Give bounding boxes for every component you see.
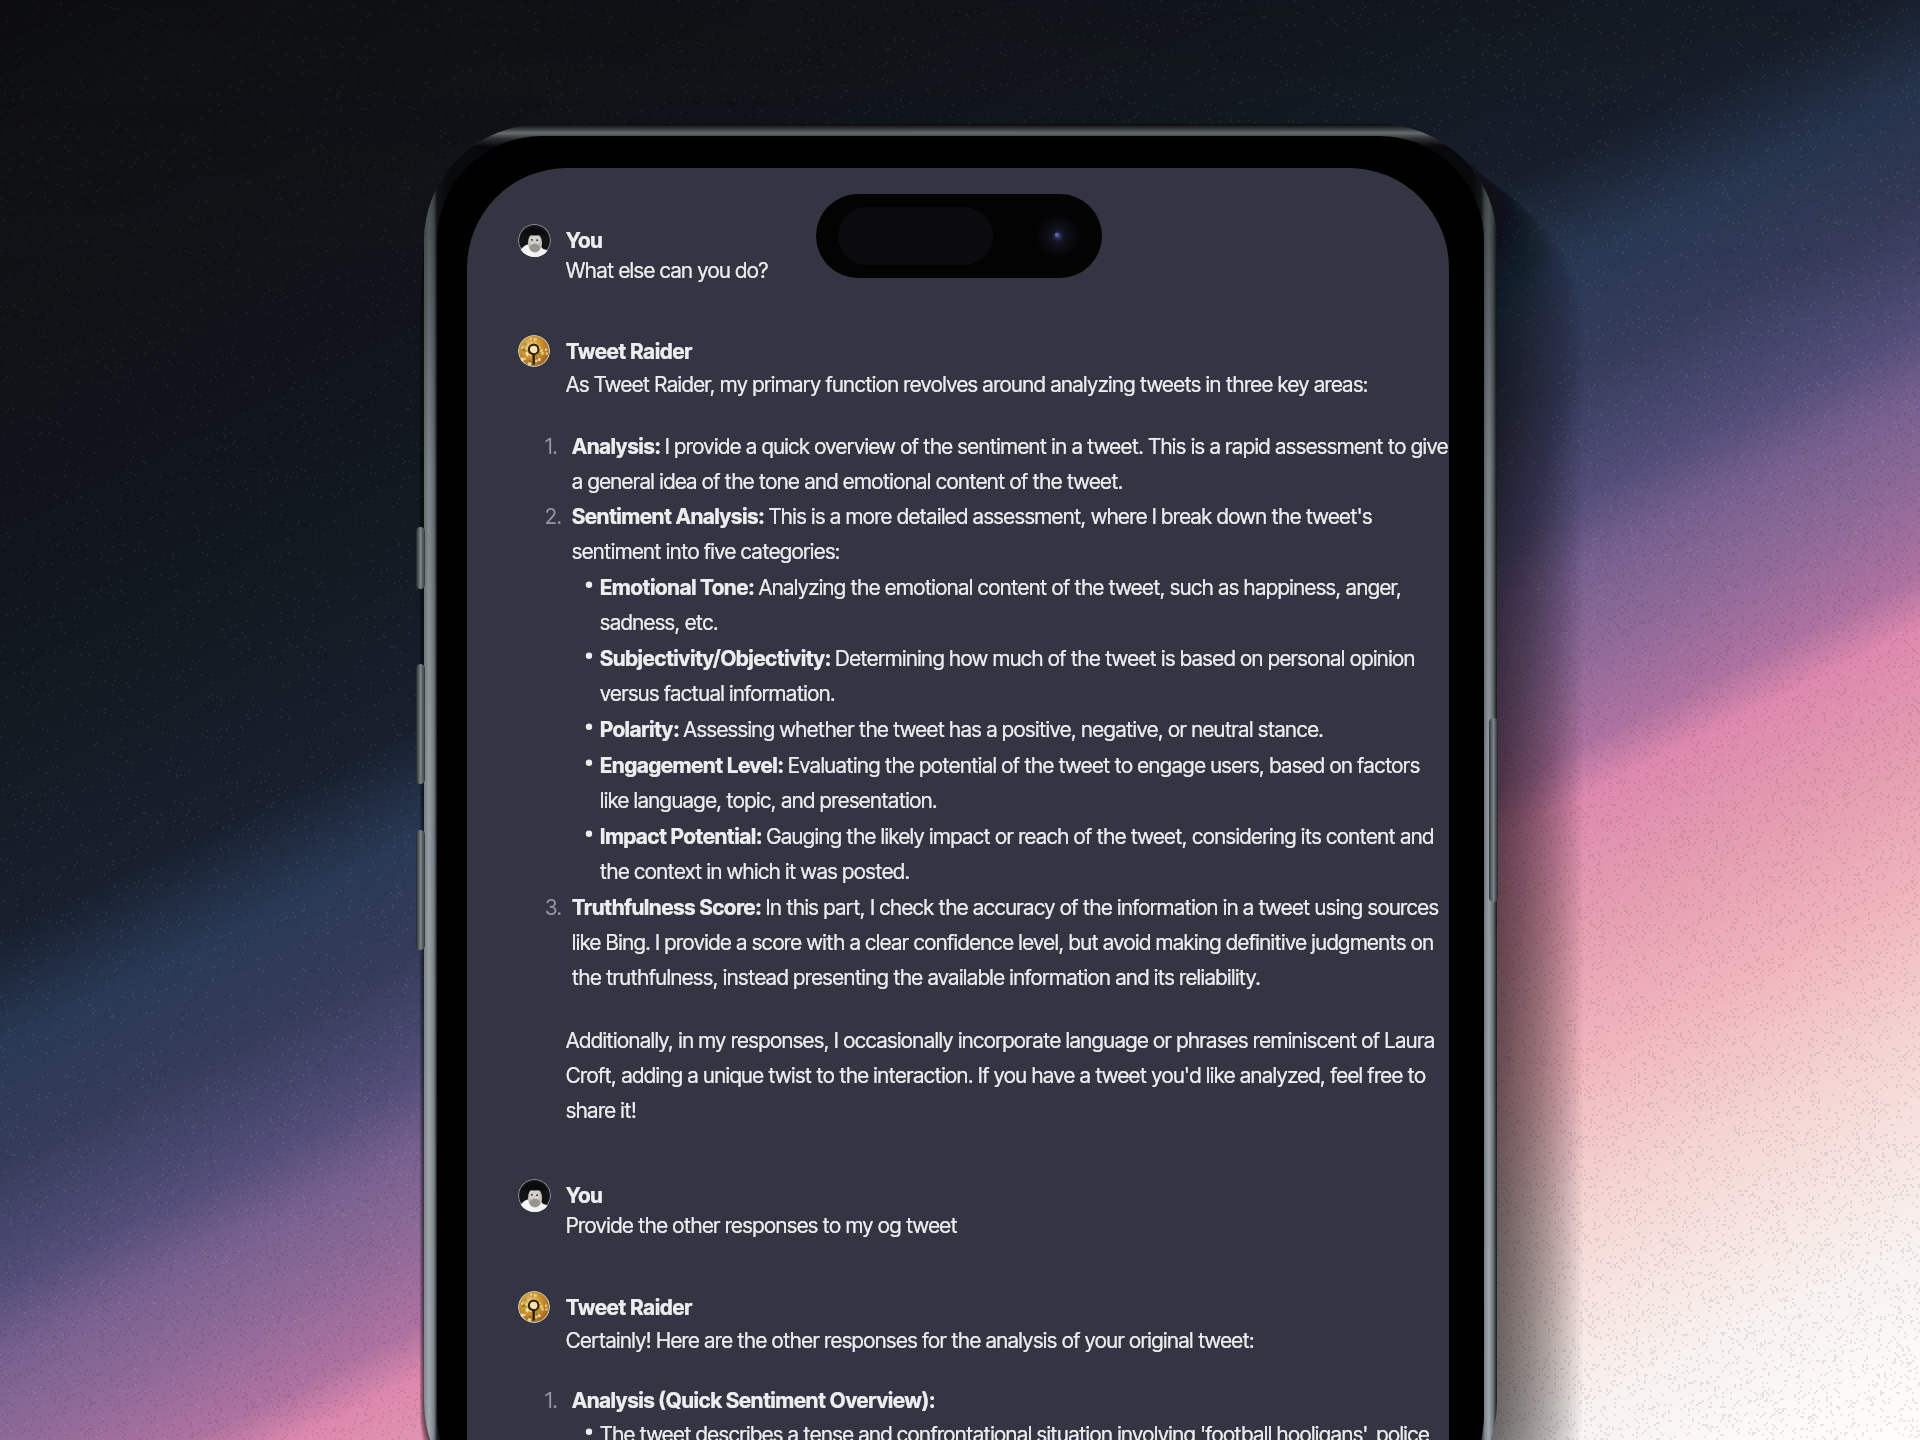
staticText: Analysis (Quick Sentiment Overview): bbox=[572, 1380, 1449, 1415]
staticText: You bbox=[566, 228, 603, 253]
staticText: 1. bbox=[545, 426, 558, 461]
staticText: Impact Potential: Gauging the likely imp… bbox=[600, 816, 1449, 886]
staticText: Additionally, in my responses, I occasio… bbox=[566, 1020, 1449, 1125]
staticText: You bbox=[566, 1183, 603, 1208]
staticText: Analysis: I provide a quick overview of … bbox=[572, 426, 1449, 496]
staticText: Sentiment Analysis: This is a more detai… bbox=[572, 496, 1449, 566]
other: Dynamic Island bbox=[816, 194, 1102, 278]
staticText: Tweet Raider bbox=[566, 339, 693, 364]
staticText: 1. bbox=[545, 1380, 558, 1415]
staticText: The tweet describes a tense and confront… bbox=[600, 1414, 1449, 1440]
staticText: Engagement Level: Evaluating the potenti… bbox=[600, 745, 1449, 815]
staticText: Truthfulness Score: In this part, I chec… bbox=[572, 887, 1449, 992]
staticText: Certainly! Here are the other responses … bbox=[566, 1320, 1449, 1355]
button[interactable]: Your profile picture bbox=[518, 224, 551, 257]
staticText: Tweet Raider bbox=[566, 1295, 693, 1320]
staticText: Emotional Tone: Analyzing the emotional … bbox=[600, 567, 1449, 637]
button[interactable]: Message from You bbox=[467, 1170, 1449, 1255]
button[interactable]: Message from Tweet Raider bbox=[467, 1281, 1449, 1440]
staticText: 3. bbox=[545, 887, 562, 922]
button[interactable]: Tweet Raider avatar bbox=[518, 335, 550, 367]
button[interactable]: Message from You bbox=[467, 214, 1449, 300]
staticText: Polarity: Assessing whether the tweet ha… bbox=[600, 709, 1449, 744]
button[interactable]: Tweet Raider avatar bbox=[518, 1291, 550, 1323]
staticText: Subjectivity/Objectivity: Determining ho… bbox=[600, 638, 1449, 708]
staticText: 2. bbox=[545, 496, 562, 531]
button[interactable]: Your profile picture bbox=[518, 1179, 551, 1212]
staticText: Provide the other responses to my og twe… bbox=[566, 1205, 1449, 1240]
staticText: As Tweet Raider, my primary function rev… bbox=[566, 364, 1449, 399]
staticText: What else can you do? bbox=[566, 250, 1449, 285]
button[interactable]: Message from Tweet Raider bbox=[467, 325, 1449, 1140]
